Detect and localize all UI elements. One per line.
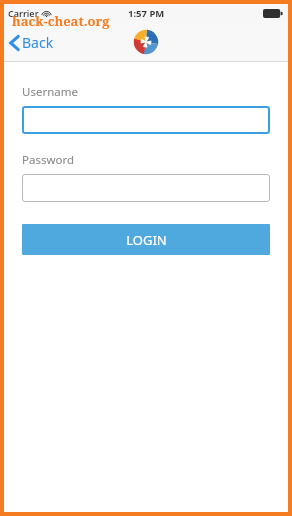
staticText: Password [22, 152, 75, 168]
staticText: Carrier [8, 7, 39, 19]
button[interactable]: LOGIN [22, 224, 270, 255]
button[interactable] [22, 106, 270, 134]
button[interactable]: App logo [133, 29, 159, 55]
staticText: hack-cheat.org [12, 12, 110, 30]
button[interactable]: Back [4, 27, 64, 58]
staticText: 1:57 PM [128, 7, 165, 20]
staticText: LOGIN [126, 231, 167, 249]
button[interactable] [22, 174, 270, 202]
staticText: Username [22, 84, 78, 100]
staticText: Back [22, 33, 54, 52]
